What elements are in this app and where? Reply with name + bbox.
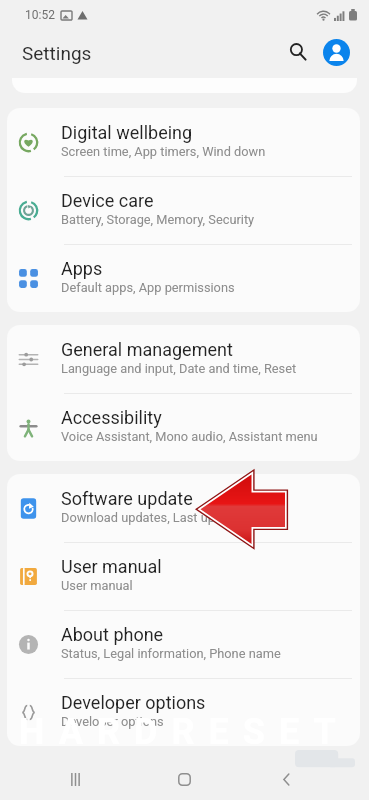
staticText: About phone: [61, 624, 164, 645]
button[interactable]: Home: [162, 757, 207, 800]
staticText: Device care: [61, 190, 154, 211]
button[interactable]: General management: [7, 325, 360, 393]
staticText: General management: [61, 339, 233, 360]
staticText: Settings: [22, 42, 92, 64]
button[interactable]: Account: [323, 39, 350, 66]
button[interactable]: Developer options: [7, 678, 360, 746]
staticText: Accessibility: [61, 407, 162, 428]
button[interactable]: Digital wellbeing: [7, 108, 360, 176]
staticText: Voice Assistant, Mono audio, Assistant m…: [61, 429, 318, 444]
staticText: Developer options: [61, 692, 206, 713]
staticText: 10:52: [25, 8, 55, 22]
staticText: Status, Legal information, Phone name: [61, 646, 281, 661]
button[interactable]: Software update: [7, 474, 360, 542]
staticText: HARDRESET: [0, 711, 369, 753]
staticText: Screen time, App timers, Wind down: [61, 144, 266, 159]
staticText: Digital wellbeing: [61, 122, 193, 143]
staticText: Developer options: [61, 714, 164, 729]
button[interactable]: Search: [282, 36, 314, 68]
button[interactable]: User manual: [7, 542, 360, 610]
staticText: Apps: [61, 258, 103, 279]
staticText: Language and input, Date and time, Reset: [61, 361, 297, 376]
staticText: Software update: [61, 488, 193, 509]
staticText: User manual: [61, 556, 162, 577]
button[interactable]: Apps: [7, 244, 360, 312]
staticText: Battery, Storage, Memory, Security: [61, 212, 255, 227]
button[interactable]: Recents: [53, 757, 98, 800]
button[interactable]: Device care: [7, 176, 360, 244]
staticText: Default apps, App permissions: [61, 280, 235, 295]
staticText: User manual: [61, 578, 133, 593]
button[interactable]: Accessibility: [7, 393, 360, 461]
staticText: Download updates, Last update: [61, 510, 241, 525]
button[interactable]: About phone: [7, 610, 360, 678]
button[interactable]: Back: [264, 757, 309, 800]
